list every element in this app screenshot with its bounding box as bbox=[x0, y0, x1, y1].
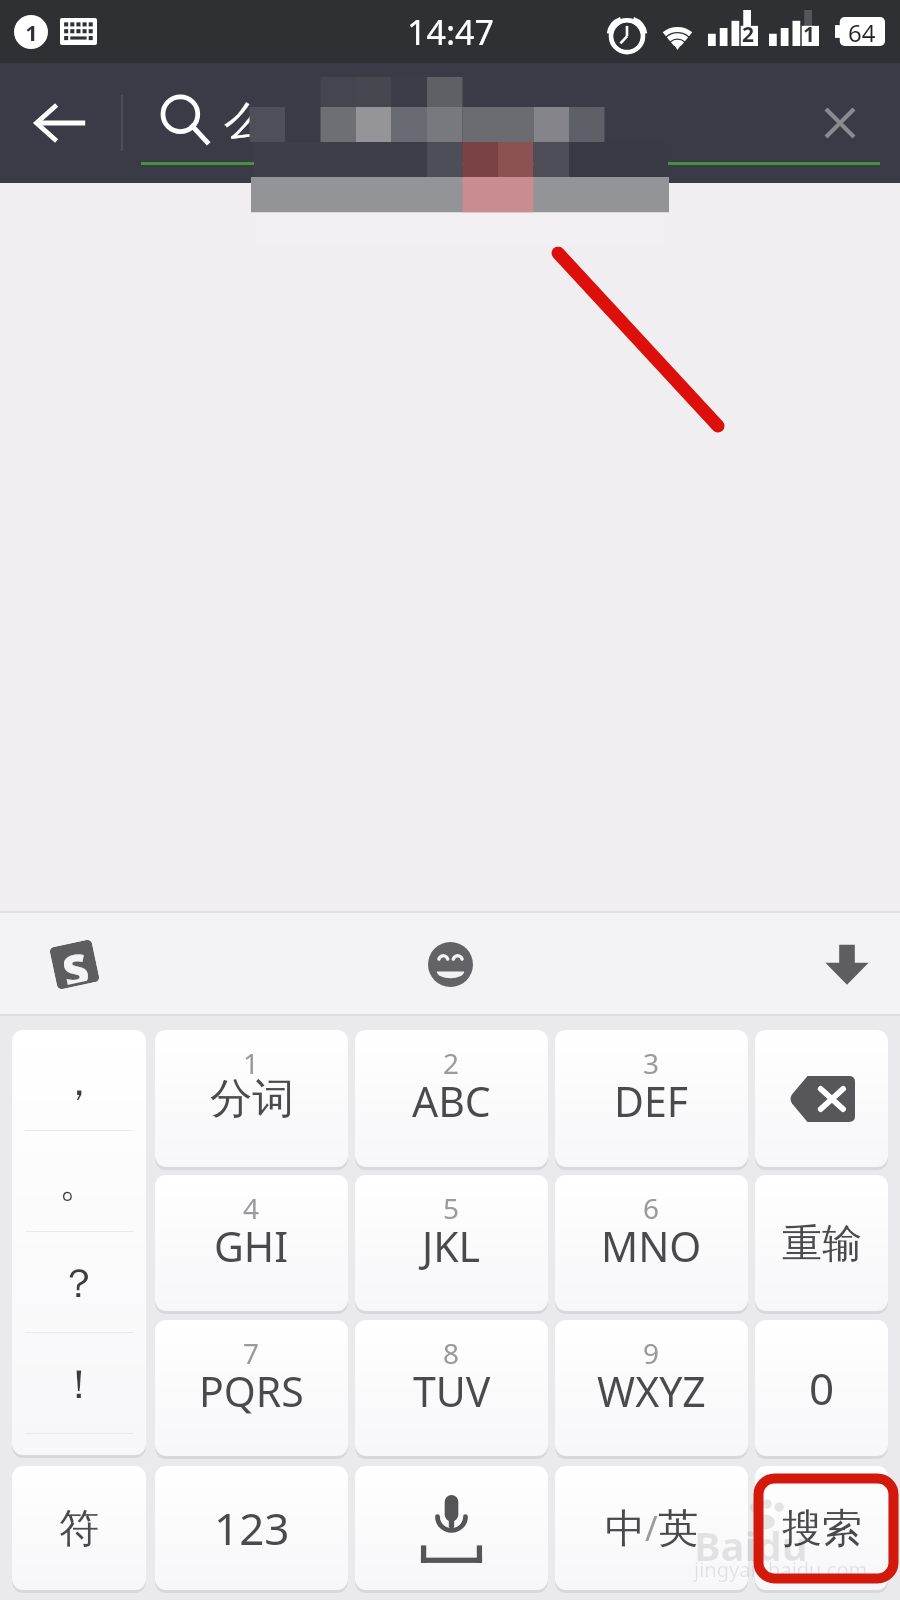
staticText: Baidu bbox=[694, 1518, 808, 1572]
staticText: PQRS bbox=[199, 1363, 304, 1419]
staticText: 7 bbox=[243, 1334, 260, 1372]
staticText: 2 bbox=[443, 1044, 460, 1082]
staticText: / bbox=[645, 1505, 658, 1551]
staticText: 搜索 bbox=[782, 1503, 862, 1553]
button[interactable]: 4 bbox=[155, 1175, 348, 1311]
staticText: 14:47 bbox=[407, 9, 494, 55]
staticText: 1 bbox=[243, 1044, 260, 1082]
button[interactable]: 0 bbox=[755, 1320, 888, 1456]
staticText: S bbox=[58, 941, 91, 985]
staticText: 123 bbox=[214, 1498, 290, 1558]
staticText: WXYZ bbox=[597, 1363, 706, 1419]
staticText: 8 bbox=[443, 1334, 460, 1372]
staticText: 。 bbox=[59, 1157, 99, 1207]
staticText: 中 bbox=[605, 1503, 645, 1553]
button[interactable]: 6 bbox=[555, 1175, 748, 1311]
button[interactable]: 5 bbox=[355, 1175, 548, 1311]
staticText: 重输 bbox=[782, 1218, 862, 1268]
staticText: jingyan.baidu.com bbox=[694, 1556, 868, 1583]
staticText: MNO bbox=[601, 1218, 702, 1274]
button[interactable]: 123 bbox=[155, 1466, 348, 1590]
staticText: 3 bbox=[643, 1044, 660, 1082]
button[interactable]: 搜索 bbox=[755, 1466, 888, 1590]
button[interactable]: 7 bbox=[155, 1320, 348, 1456]
button[interactable]: Emoji bbox=[415, 929, 485, 999]
button[interactable]: ， bbox=[12, 1030, 146, 1455]
staticText: ！ bbox=[59, 1359, 99, 1409]
staticText: 6 bbox=[643, 1189, 660, 1227]
staticText: 2 bbox=[742, 20, 755, 49]
staticText: DEF bbox=[614, 1073, 689, 1129]
staticText: 英 bbox=[658, 1503, 698, 1553]
button[interactable] bbox=[755, 1030, 888, 1167]
staticText: ABC bbox=[412, 1073, 491, 1129]
button[interactable]: Sogou keyboard menu bbox=[39, 929, 109, 999]
staticText: JKL bbox=[422, 1218, 481, 1274]
staticText: 分词 bbox=[210, 1073, 294, 1126]
button[interactable]: 重输 bbox=[755, 1175, 888, 1311]
staticText: 么 bbox=[224, 96, 264, 146]
button[interactable]: Clear search bbox=[780, 63, 900, 183]
staticText: ， bbox=[59, 1056, 99, 1106]
button[interactable]: 3 bbox=[555, 1030, 748, 1167]
staticText: GHI bbox=[214, 1218, 289, 1274]
button[interactable]: 1 bbox=[155, 1030, 348, 1167]
button[interactable]: Back bbox=[0, 63, 120, 183]
button[interactable]: 2 bbox=[355, 1030, 548, 1167]
button[interactable]: 中 bbox=[555, 1466, 748, 1590]
button[interactable]: 8 bbox=[355, 1320, 548, 1456]
button[interactable]: 9 bbox=[555, 1320, 748, 1456]
button[interactable] bbox=[355, 1466, 548, 1590]
staticText: 1 bbox=[803, 20, 816, 49]
staticText: 0 bbox=[809, 1358, 835, 1418]
staticText: TUV bbox=[413, 1363, 491, 1419]
staticText: 4 bbox=[243, 1189, 260, 1227]
button[interactable]: 符 bbox=[12, 1466, 146, 1590]
staticText: 64 bbox=[848, 16, 876, 45]
button[interactable]: Hide keyboard bbox=[812, 929, 882, 999]
staticText: 1 bbox=[25, 17, 38, 47]
staticText: 符 bbox=[59, 1503, 99, 1553]
staticText: 9 bbox=[643, 1334, 660, 1372]
staticText: ？ bbox=[59, 1258, 99, 1308]
staticText: 5 bbox=[443, 1189, 460, 1227]
